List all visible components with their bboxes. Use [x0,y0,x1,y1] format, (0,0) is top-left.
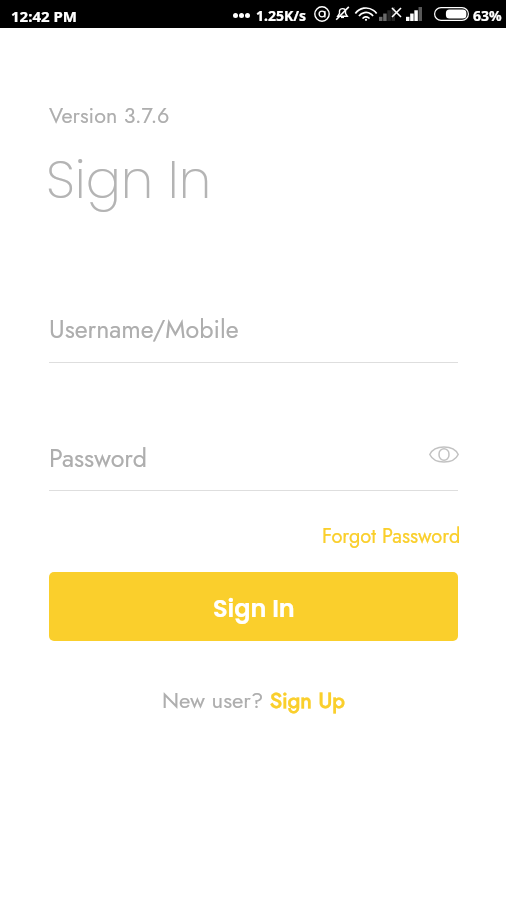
staticText: 1.25K/s [256,6,307,25]
staticText: Password [49,440,148,476]
button[interactable]: New user? [162,684,345,716]
staticText: 12:42 PM [11,6,77,26]
staticText: Username/Mobile [49,311,239,347]
button[interactable]: Forgot Password [322,522,461,551]
button[interactable]: Sign In [49,572,458,641]
staticText: 63% [473,6,502,25]
staticText: Sign In [213,592,295,626]
staticText: Sign In [46,143,212,216]
staticText: New user? [162,684,270,716]
staticText: Sign Up [270,684,345,716]
button[interactable]: Show password [421,432,466,477]
staticText: Version 3.7.6 [49,100,170,131]
